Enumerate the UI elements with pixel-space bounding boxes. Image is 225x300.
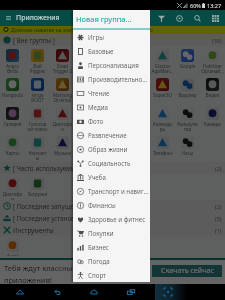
button[interactable]: Спорт bbox=[73, 268, 150, 282]
button[interactable]: Камера bbox=[200, 104, 225, 133]
button[interactable]: Diamond bbox=[75, 46, 100, 75]
button[interactable]: Grid view bbox=[206, 10, 224, 26]
button[interactable]: Образ жизни bbox=[73, 142, 150, 156]
staticText: Телефон bbox=[150, 150, 175, 156]
staticText: SuperSU bbox=[150, 92, 175, 98]
button[interactable]: Mu… се… bbox=[75, 75, 100, 104]
button[interactable]: За… ф… bbox=[100, 104, 125, 133]
staticText: Финансы bbox=[88, 201, 116, 209]
button[interactable]: Календа рь bbox=[150, 104, 175, 133]
button[interactable]: Up bbox=[12, 284, 28, 300]
button[interactable]: Финансы bbox=[73, 198, 150, 212]
button[interactable]: До… р… bbox=[75, 104, 100, 133]
button[interactable]: Home bbox=[86, 284, 102, 300]
button[interactable]: Н… се… bbox=[75, 133, 100, 162]
staticText: Diamond bbox=[75, 63, 100, 69]
button[interactable]: Диктофо н bbox=[0, 174, 25, 200]
button[interactable]: Медиа bbox=[73, 100, 150, 114]
button[interactable]: Покупки bbox=[73, 226, 150, 240]
staticText: (1) bbox=[215, 227, 222, 234]
staticText: Развлечение bbox=[88, 131, 127, 139]
button[interactable]: Базовые bbox=[73, 44, 150, 58]
staticText: Погода bbox=[88, 257, 110, 265]
button[interactable]: Angry Birds bbox=[0, 46, 25, 75]
staticText: Dead Trigger 2 bbox=[50, 63, 75, 74]
button[interactable]: Hangouts bbox=[0, 75, 25, 104]
button[interactable]: Чтение bbox=[73, 86, 150, 100]
button[interactable]: Видео bbox=[200, 75, 225, 104]
button[interactable]: Диктофо н bbox=[50, 104, 75, 133]
button[interactable]: Развлечение bbox=[73, 128, 150, 142]
button[interactable]: Dead Trigger 2 bbox=[50, 46, 75, 75]
button[interactable]: Голосов ой поиск bbox=[25, 104, 50, 133]
button[interactable]: Галерея bbox=[0, 104, 25, 133]
button[interactable]: Bad Piggies bbox=[25, 46, 50, 75]
staticText: Камера bbox=[200, 121, 225, 127]
button[interactable]: Фото bbox=[73, 114, 150, 128]
button[interactable]: Screenshot bbox=[160, 284, 176, 300]
button[interactable]: Социальность bbox=[73, 156, 150, 170]
button[interactable]: Телефон bbox=[150, 133, 175, 162]
staticText: Покупки bbox=[88, 229, 114, 237]
button[interactable]: Habitizer Органай… bbox=[200, 46, 225, 75]
button[interactable]: xingo ROOT bbox=[25, 75, 50, 104]
staticText: Диктофо н bbox=[50, 121, 75, 132]
button[interactable]: Sort bbox=[170, 10, 188, 26]
button[interactable]: Op… mi… bbox=[125, 75, 150, 104]
button[interactable]: С… D bbox=[125, 133, 150, 162]
button[interactable]: Калькуля тор bbox=[175, 104, 200, 133]
button[interactable]: ES bbox=[125, 46, 150, 75]
button[interactable]: Часы bbox=[175, 133, 200, 162]
button[interactable]: Браузер bbox=[175, 75, 200, 104]
staticText: Hangouts bbox=[0, 92, 25, 98]
button[interactable]: [ Вне группы ] bbox=[3, 34, 222, 46]
button[interactable]: Музыка bbox=[50, 133, 75, 162]
staticText: Бизнес bbox=[88, 243, 109, 251]
button[interactable]: Recents bbox=[123, 284, 139, 300]
button[interactable]: Погода bbox=[73, 254, 150, 268]
staticText: Angry Birds bbox=[0, 63, 25, 74]
staticText: [ Часто используемые ] bbox=[13, 164, 215, 172]
button[interactable]: Mahjong Oriental bbox=[50, 75, 75, 104]
button[interactable]: Glextor AppMan… bbox=[150, 46, 175, 75]
staticText: С… D bbox=[125, 150, 150, 161]
button[interactable]: Здоровье и фитнес bbox=[73, 212, 150, 226]
button[interactable]: Бизнес bbox=[73, 240, 150, 254]
button[interactable]: Загрузки bbox=[25, 174, 50, 200]
button[interactable]: Search bbox=[188, 10, 206, 26]
staticText: Mahjong Oriental bbox=[50, 92, 75, 103]
button[interactable]: Menu bbox=[0, 10, 16, 26]
button[interactable]: Скачать сейчас bbox=[152, 265, 222, 277]
button[interactable]: SuperSU bbox=[150, 75, 175, 104]
staticText: [ Последние запущенные ] bbox=[13, 202, 215, 210]
button[interactable]: Контакт ы bbox=[25, 133, 50, 162]
button[interactable]: Новая группа... bbox=[73, 10, 150, 28]
button[interactable]: Клиент bbox=[100, 46, 125, 75]
button[interactable]: Карты bbox=[0, 133, 25, 162]
staticText: Медиа bbox=[88, 103, 108, 111]
staticText: (39) bbox=[212, 37, 222, 44]
button[interactable]: Транспорт и навига… bbox=[73, 184, 150, 198]
button[interactable]: Инструменты bbox=[3, 224, 222, 236]
button[interactable]: Игры bbox=[73, 30, 150, 44]
staticText: Приложения bbox=[16, 13, 60, 23]
staticText: До… р… bbox=[75, 121, 100, 132]
button[interactable]: No… Lau… bbox=[100, 75, 125, 104]
button[interactable]: [ Последние установленные ] bbox=[3, 212, 222, 224]
button[interactable]: [ Часто используемые ] bbox=[3, 162, 222, 174]
button[interactable]: Учеба bbox=[73, 170, 150, 184]
button[interactable]: Google bbox=[175, 46, 200, 75]
staticText: Образ жизни bbox=[88, 145, 128, 153]
button[interactable]: Filter bbox=[152, 10, 170, 26]
button[interactable]: Back bbox=[49, 284, 65, 300]
button[interactable]: Р… м… bbox=[100, 133, 125, 162]
button[interactable]: Персонализация bbox=[73, 58, 150, 72]
staticText: Habitizer Органай… bbox=[200, 63, 225, 74]
staticText: Музыка bbox=[50, 150, 75, 156]
button[interactable]: Avast bbox=[0, 236, 25, 256]
button[interactable]: [ Последние запущенные ] bbox=[3, 200, 222, 212]
button[interactable]: Производительнос… bbox=[73, 72, 150, 86]
